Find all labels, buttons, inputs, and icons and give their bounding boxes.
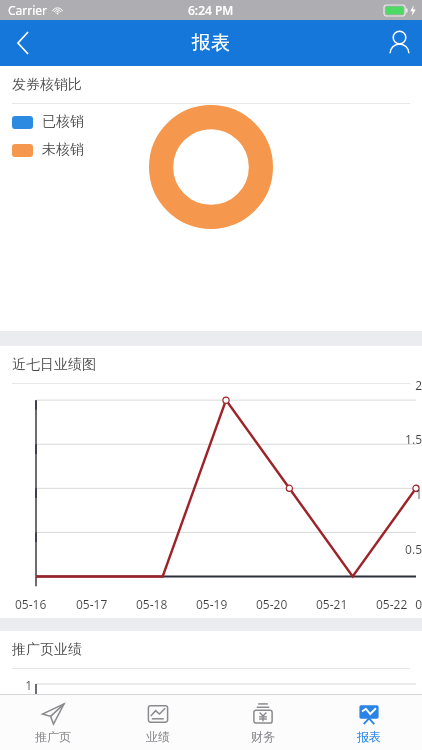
button[interactable]: 财务 <box>210 695 316 750</box>
staticText: 0 <box>390 596 422 611</box>
button[interactable]: Back <box>0 20 46 66</box>
staticText: 1 <box>390 486 422 502</box>
staticText: 报表 <box>357 729 381 744</box>
staticText: 发券核销比 <box>12 76 82 94</box>
staticText: 推广页业绩 <box>12 641 82 659</box>
staticText: 推广页 <box>35 729 71 744</box>
button[interactable]: Account <box>376 20 422 66</box>
staticText: 05-21 <box>316 596 348 612</box>
staticText: 2 <box>390 377 422 393</box>
staticText: 05-20 <box>256 596 288 612</box>
button[interactable]: 报表 <box>316 695 422 750</box>
staticText: Carrier <box>8 2 48 18</box>
staticText: 05-17 <box>76 596 108 612</box>
staticText: 0.5 <box>390 541 422 557</box>
staticText: 报表 <box>192 31 230 55</box>
staticText: 1.5 <box>390 431 422 447</box>
staticText: 未核销 <box>42 141 84 159</box>
staticText: 近七日业绩图 <box>12 356 96 374</box>
staticText: 05-22 <box>376 596 408 612</box>
button[interactable]: 业绩 <box>105 695 210 750</box>
staticText: 05-16 <box>15 596 47 612</box>
button[interactable]: 推广页 <box>0 695 105 750</box>
staticText: 6:24 PM <box>188 2 234 18</box>
staticText: 业绩 <box>146 729 170 744</box>
staticText: 05-19 <box>196 596 228 612</box>
staticText: 1 <box>0 677 32 693</box>
staticText: 05-18 <box>136 596 168 612</box>
staticText: 已核销 <box>42 113 84 131</box>
staticText: 财务 <box>251 729 275 744</box>
